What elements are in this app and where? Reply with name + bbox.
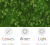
staticText: Light (38, 36, 46, 41)
button[interactable]: Leaves (0, 25, 17, 45)
staticText: Leaves (2, 36, 14, 41)
staticText: Daily (20, 41, 29, 45)
staticText: Bright (36, 41, 47, 45)
button[interactable]: Water (17, 25, 33, 45)
staticText: Healthy (2, 41, 15, 45)
button[interactable]: Light (33, 25, 50, 45)
staticText: Water (19, 36, 30, 41)
